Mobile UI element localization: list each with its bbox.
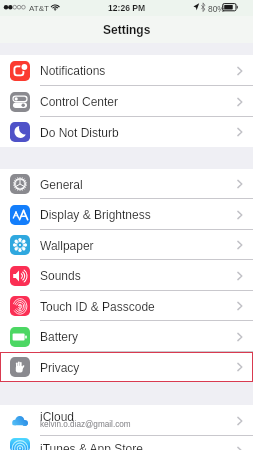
staticText: Display & Brightness <box>40 208 151 221</box>
button[interactable]: Sounds <box>0 260 253 291</box>
staticText: Wallpaper <box>40 239 94 252</box>
button[interactable]: Control Center <box>0 86 253 117</box>
staticText: Privacy <box>40 361 80 374</box>
button[interactable]: Touch ID & Passcode <box>0 291 253 321</box>
staticText: Touch ID & Passcode <box>40 300 155 313</box>
button[interactable]: General <box>0 169 253 199</box>
button[interactable]: Wallpaper <box>0 230 253 260</box>
button[interactable]: Privacy <box>0 352 253 382</box>
button[interactable]: Display & Brightness <box>0 199 253 230</box>
staticText: Sounds <box>40 269 81 282</box>
button[interactable]: Notifications <box>0 55 253 86</box>
staticText: kelvin.o.diaz@gmail.com <box>40 420 131 429</box>
staticText: 80% <box>208 4 225 13</box>
staticText: Battery <box>40 330 79 343</box>
staticText: 12:26 PM <box>108 3 146 13</box>
staticText: AT&T <box>29 4 49 13</box>
staticText: iTunes & App Store <box>40 442 143 450</box>
staticText: iCloud <box>40 410 75 423</box>
button[interactable]: iTunes & App Store <box>0 436 253 450</box>
staticText: Notifications <box>40 64 106 77</box>
button[interactable]: iCloud <box>0 405 253 436</box>
staticText: Do Not Disturb <box>40 126 119 139</box>
button[interactable]: Battery <box>0 321 253 352</box>
button[interactable]: Do Not Disturb <box>0 117 253 147</box>
staticText: Settings <box>103 23 151 36</box>
staticText: General <box>40 178 83 191</box>
staticText: Control Center <box>40 95 119 108</box>
